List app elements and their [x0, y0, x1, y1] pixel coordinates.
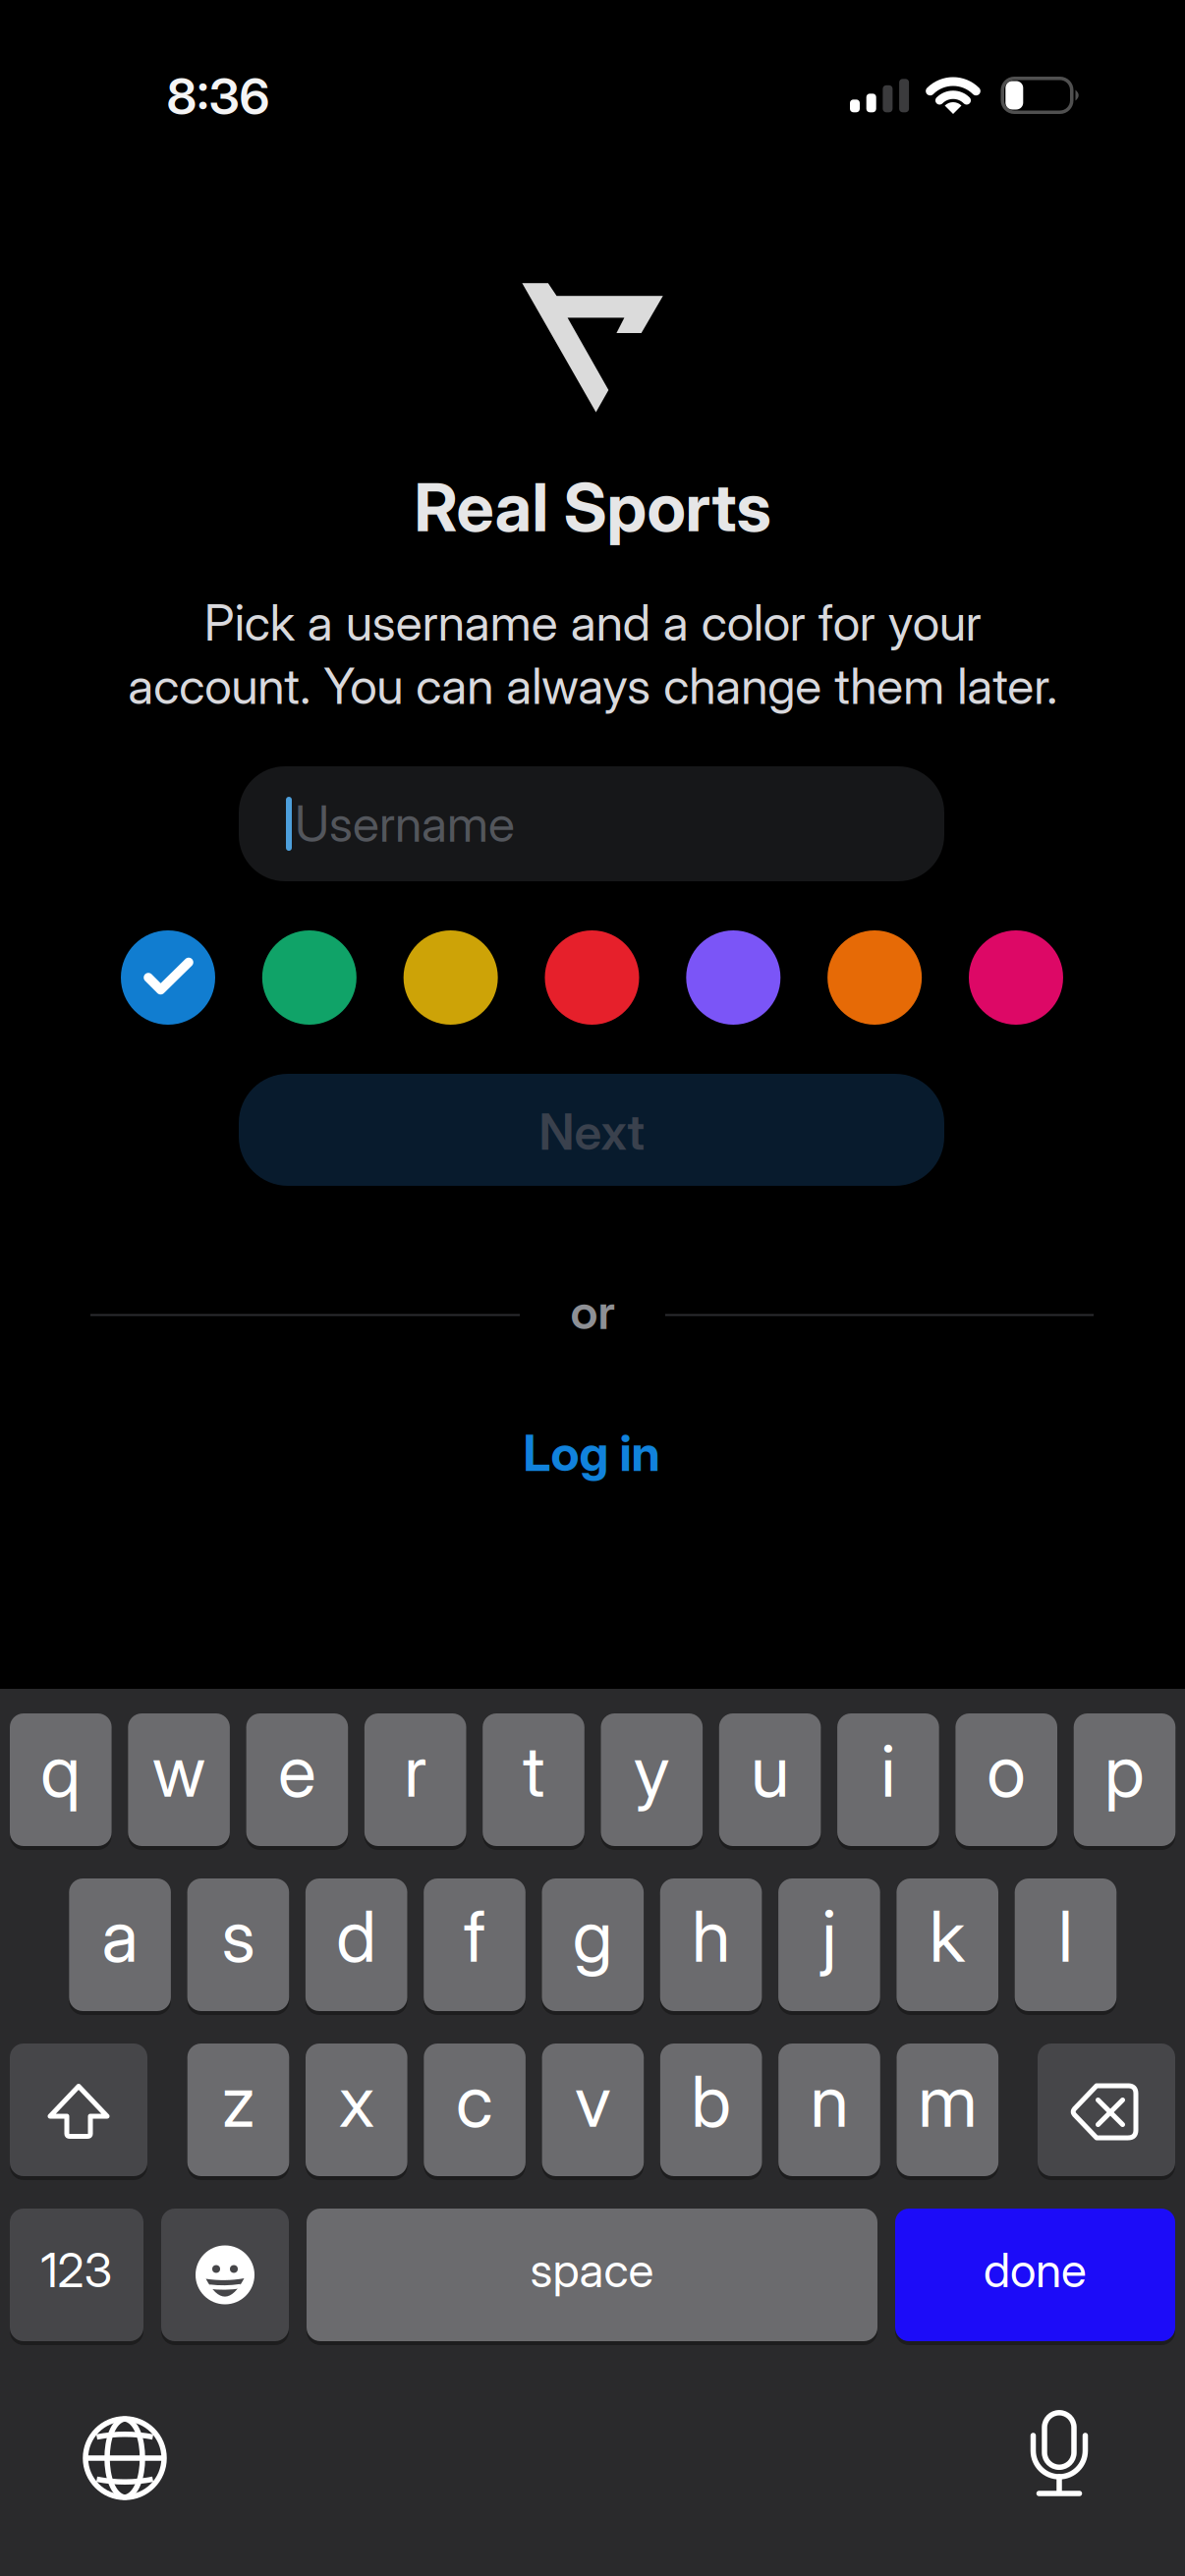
staticText: p — [1104, 1728, 1145, 1814]
staticText: t — [523, 1728, 544, 1814]
button[interactable]: Blue — [121, 930, 215, 1025]
staticText: n — [810, 2058, 848, 2144]
button[interactable]: Next keyboard — [76, 2409, 174, 2507]
staticText: m — [918, 2058, 977, 2144]
staticText: Real Sports — [414, 467, 771, 547]
button[interactable]: Log in — [474, 1409, 709, 1497]
button[interactable]: m — [897, 2042, 998, 2178]
button[interactable]: j — [778, 1876, 880, 2013]
staticText: h — [692, 1893, 730, 1979]
button[interactable]: done — [895, 2207, 1175, 2343]
staticText: b — [691, 2058, 731, 2144]
staticText: q — [41, 1728, 81, 1814]
staticText: s — [221, 1893, 255, 1979]
button[interactable]: Yellow — [404, 930, 498, 1025]
staticText: f — [464, 1893, 485, 1979]
staticText: r — [404, 1728, 427, 1814]
staticText: z — [222, 2058, 255, 2144]
button[interactable]: e — [246, 1711, 348, 1848]
button[interactable]: Pink — [969, 930, 1063, 1025]
staticText: x — [339, 2058, 374, 2144]
button[interactable]: c — [424, 2042, 526, 2178]
button[interactable]: v — [542, 2042, 644, 2178]
staticText: w — [152, 1728, 205, 1814]
button[interactable]: Red — [545, 930, 639, 1025]
staticText: Log in — [523, 1423, 660, 1483]
button[interactable]: Purple — [686, 930, 780, 1025]
button[interactable]: r — [364, 1711, 466, 1848]
button[interactable]: h — [660, 1876, 762, 2013]
staticText: u — [751, 1728, 789, 1814]
button[interactable]: d — [305, 1876, 407, 2013]
button[interactable]: n — [778, 2042, 880, 2178]
staticText: or — [570, 1282, 615, 1341]
staticText: done — [984, 2241, 1087, 2299]
button[interactable]: g — [542, 1876, 644, 2013]
staticText: j — [822, 1893, 837, 1979]
button[interactable]: Green — [262, 930, 356, 1025]
button[interactable]: z — [187, 2042, 289, 2178]
staticText: Pick a username and a color for your acc… — [128, 593, 1057, 716]
staticText: 123 — [41, 2241, 113, 2299]
button[interactable]: f — [424, 1876, 525, 2013]
button[interactable]: s — [187, 1876, 289, 2013]
staticText: k — [929, 1893, 966, 1979]
button[interactable]: i — [837, 1711, 939, 1848]
button[interactable]: y — [601, 1711, 703, 1848]
staticText: 8:36 — [167, 66, 270, 127]
button[interactable]: Dictation — [1010, 2405, 1108, 2513]
button[interactable]: q — [10, 1711, 112, 1848]
button[interactable]: b — [660, 2042, 762, 2178]
button[interactable]: o — [955, 1711, 1057, 1848]
button[interactable]: Next — [239, 1074, 944, 1186]
button[interactable]: a — [69, 1876, 171, 2013]
button[interactable]: u — [719, 1711, 821, 1848]
button[interactable]: l — [1015, 1876, 1117, 2013]
staticText: e — [278, 1728, 316, 1814]
staticText: a — [102, 1893, 138, 1979]
button[interactable]: p — [1074, 1711, 1175, 1848]
button[interactable]: space — [307, 2207, 877, 2343]
staticText: space — [530, 2241, 654, 2299]
staticText: g — [573, 1893, 613, 1979]
staticText: y — [634, 1728, 670, 1814]
staticText: Username — [295, 794, 515, 854]
button[interactable]: Emoji — [161, 2207, 289, 2343]
staticText: i — [881, 1728, 896, 1814]
staticText: Next — [539, 1102, 644, 1162]
staticText: l — [1058, 1893, 1073, 1979]
button[interactable]: Orange — [828, 930, 922, 1025]
staticText: v — [575, 2058, 611, 2144]
button[interactable]: Shift — [10, 2042, 147, 2178]
button[interactable]: w — [128, 1711, 230, 1848]
button[interactable]: t — [483, 1711, 584, 1848]
staticText: d — [336, 1893, 377, 1979]
staticText: o — [987, 1728, 1026, 1814]
button[interactable]: 123 — [10, 2207, 143, 2343]
button[interactable]: Username — [239, 766, 944, 881]
staticText: c — [456, 2058, 493, 2144]
button[interactable]: Delete — [1038, 2042, 1175, 2178]
button[interactable]: k — [897, 1876, 998, 2013]
button[interactable]: x — [306, 2042, 407, 2178]
